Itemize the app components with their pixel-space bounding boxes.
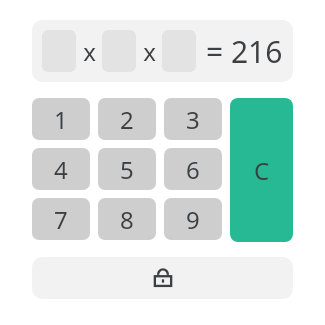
- button[interactable]: 1: [32, 98, 90, 140]
- staticText: x: [143, 35, 156, 68]
- button[interactable]: 3: [164, 98, 222, 140]
- staticText: 6: [186, 153, 200, 186]
- button[interactable]: Lock: [32, 257, 293, 299]
- staticText: = 216: [206, 31, 283, 72]
- staticText: 3: [186, 103, 200, 136]
- button[interactable]: 7: [32, 198, 90, 240]
- button[interactable]: 4: [32, 148, 90, 190]
- staticText: 8: [120, 203, 134, 236]
- button[interactable]: 8: [98, 198, 156, 240]
- staticText: x: [83, 35, 96, 68]
- button[interactable]: 2: [98, 98, 156, 140]
- staticText: 1: [54, 103, 68, 136]
- staticText: 9: [186, 203, 200, 236]
- staticText: 2: [120, 103, 134, 136]
- staticText: 5: [120, 153, 134, 186]
- staticText: C: [254, 154, 270, 187]
- button[interactable]: 5: [98, 148, 156, 190]
- staticText: 4: [54, 153, 68, 186]
- button[interactable]: 6: [164, 148, 222, 190]
- staticText: 7: [54, 203, 68, 236]
- button[interactable]: 9: [164, 198, 222, 240]
- button[interactable]: C: [230, 98, 293, 242]
